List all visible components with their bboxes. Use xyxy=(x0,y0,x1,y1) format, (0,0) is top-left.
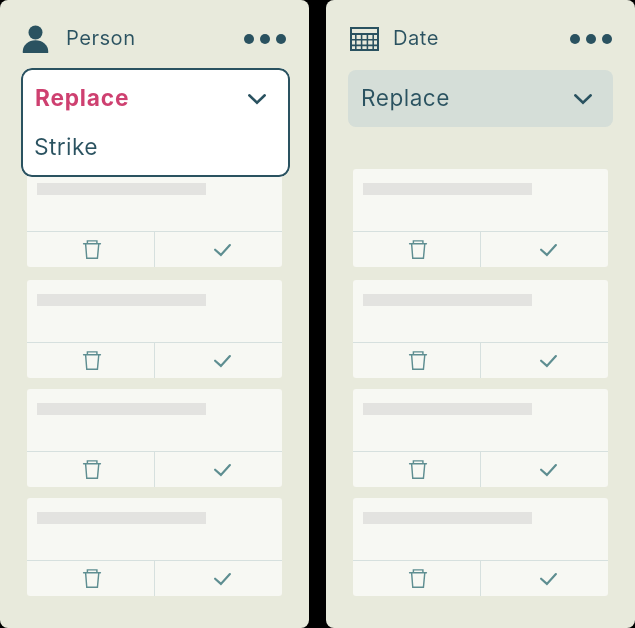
button[interactable]: Delete xyxy=(353,452,480,487)
button[interactable]: Confirm xyxy=(481,452,608,487)
button[interactable]: Delete xyxy=(353,232,480,267)
button[interactable]: Confirm xyxy=(155,452,282,487)
button[interactable]: Confirm xyxy=(155,232,282,267)
button[interactable]: Delete xyxy=(27,452,154,487)
button[interactable]: Confirm xyxy=(155,343,282,378)
button[interactable]: Confirm xyxy=(155,561,282,596)
button[interactable]: Confirm xyxy=(481,343,608,378)
button[interactable]: Confirm xyxy=(481,561,608,596)
button[interactable]: Replace xyxy=(21,70,290,123)
button[interactable]: Delete xyxy=(27,561,154,596)
button[interactable]: Confirm xyxy=(481,232,608,267)
button[interactable]: Person field xyxy=(22,25,49,53)
button[interactable]: Date field xyxy=(350,27,379,51)
staticText: Person xyxy=(66,25,136,49)
button[interactable]: Strike xyxy=(21,123,290,175)
staticText: Strike xyxy=(34,133,98,161)
button[interactable]: Delete xyxy=(27,232,154,267)
button[interactable]: More options xyxy=(565,29,617,49)
button[interactable]: Delete xyxy=(353,343,480,378)
button[interactable]: Delete xyxy=(353,561,480,596)
button[interactable]: Delete xyxy=(27,343,154,378)
button[interactable]: More options xyxy=(239,29,291,49)
button[interactable]: Replace xyxy=(348,70,613,127)
staticText: Replace xyxy=(361,84,450,111)
staticText: Date xyxy=(393,25,439,49)
staticText: Replace xyxy=(35,84,130,111)
